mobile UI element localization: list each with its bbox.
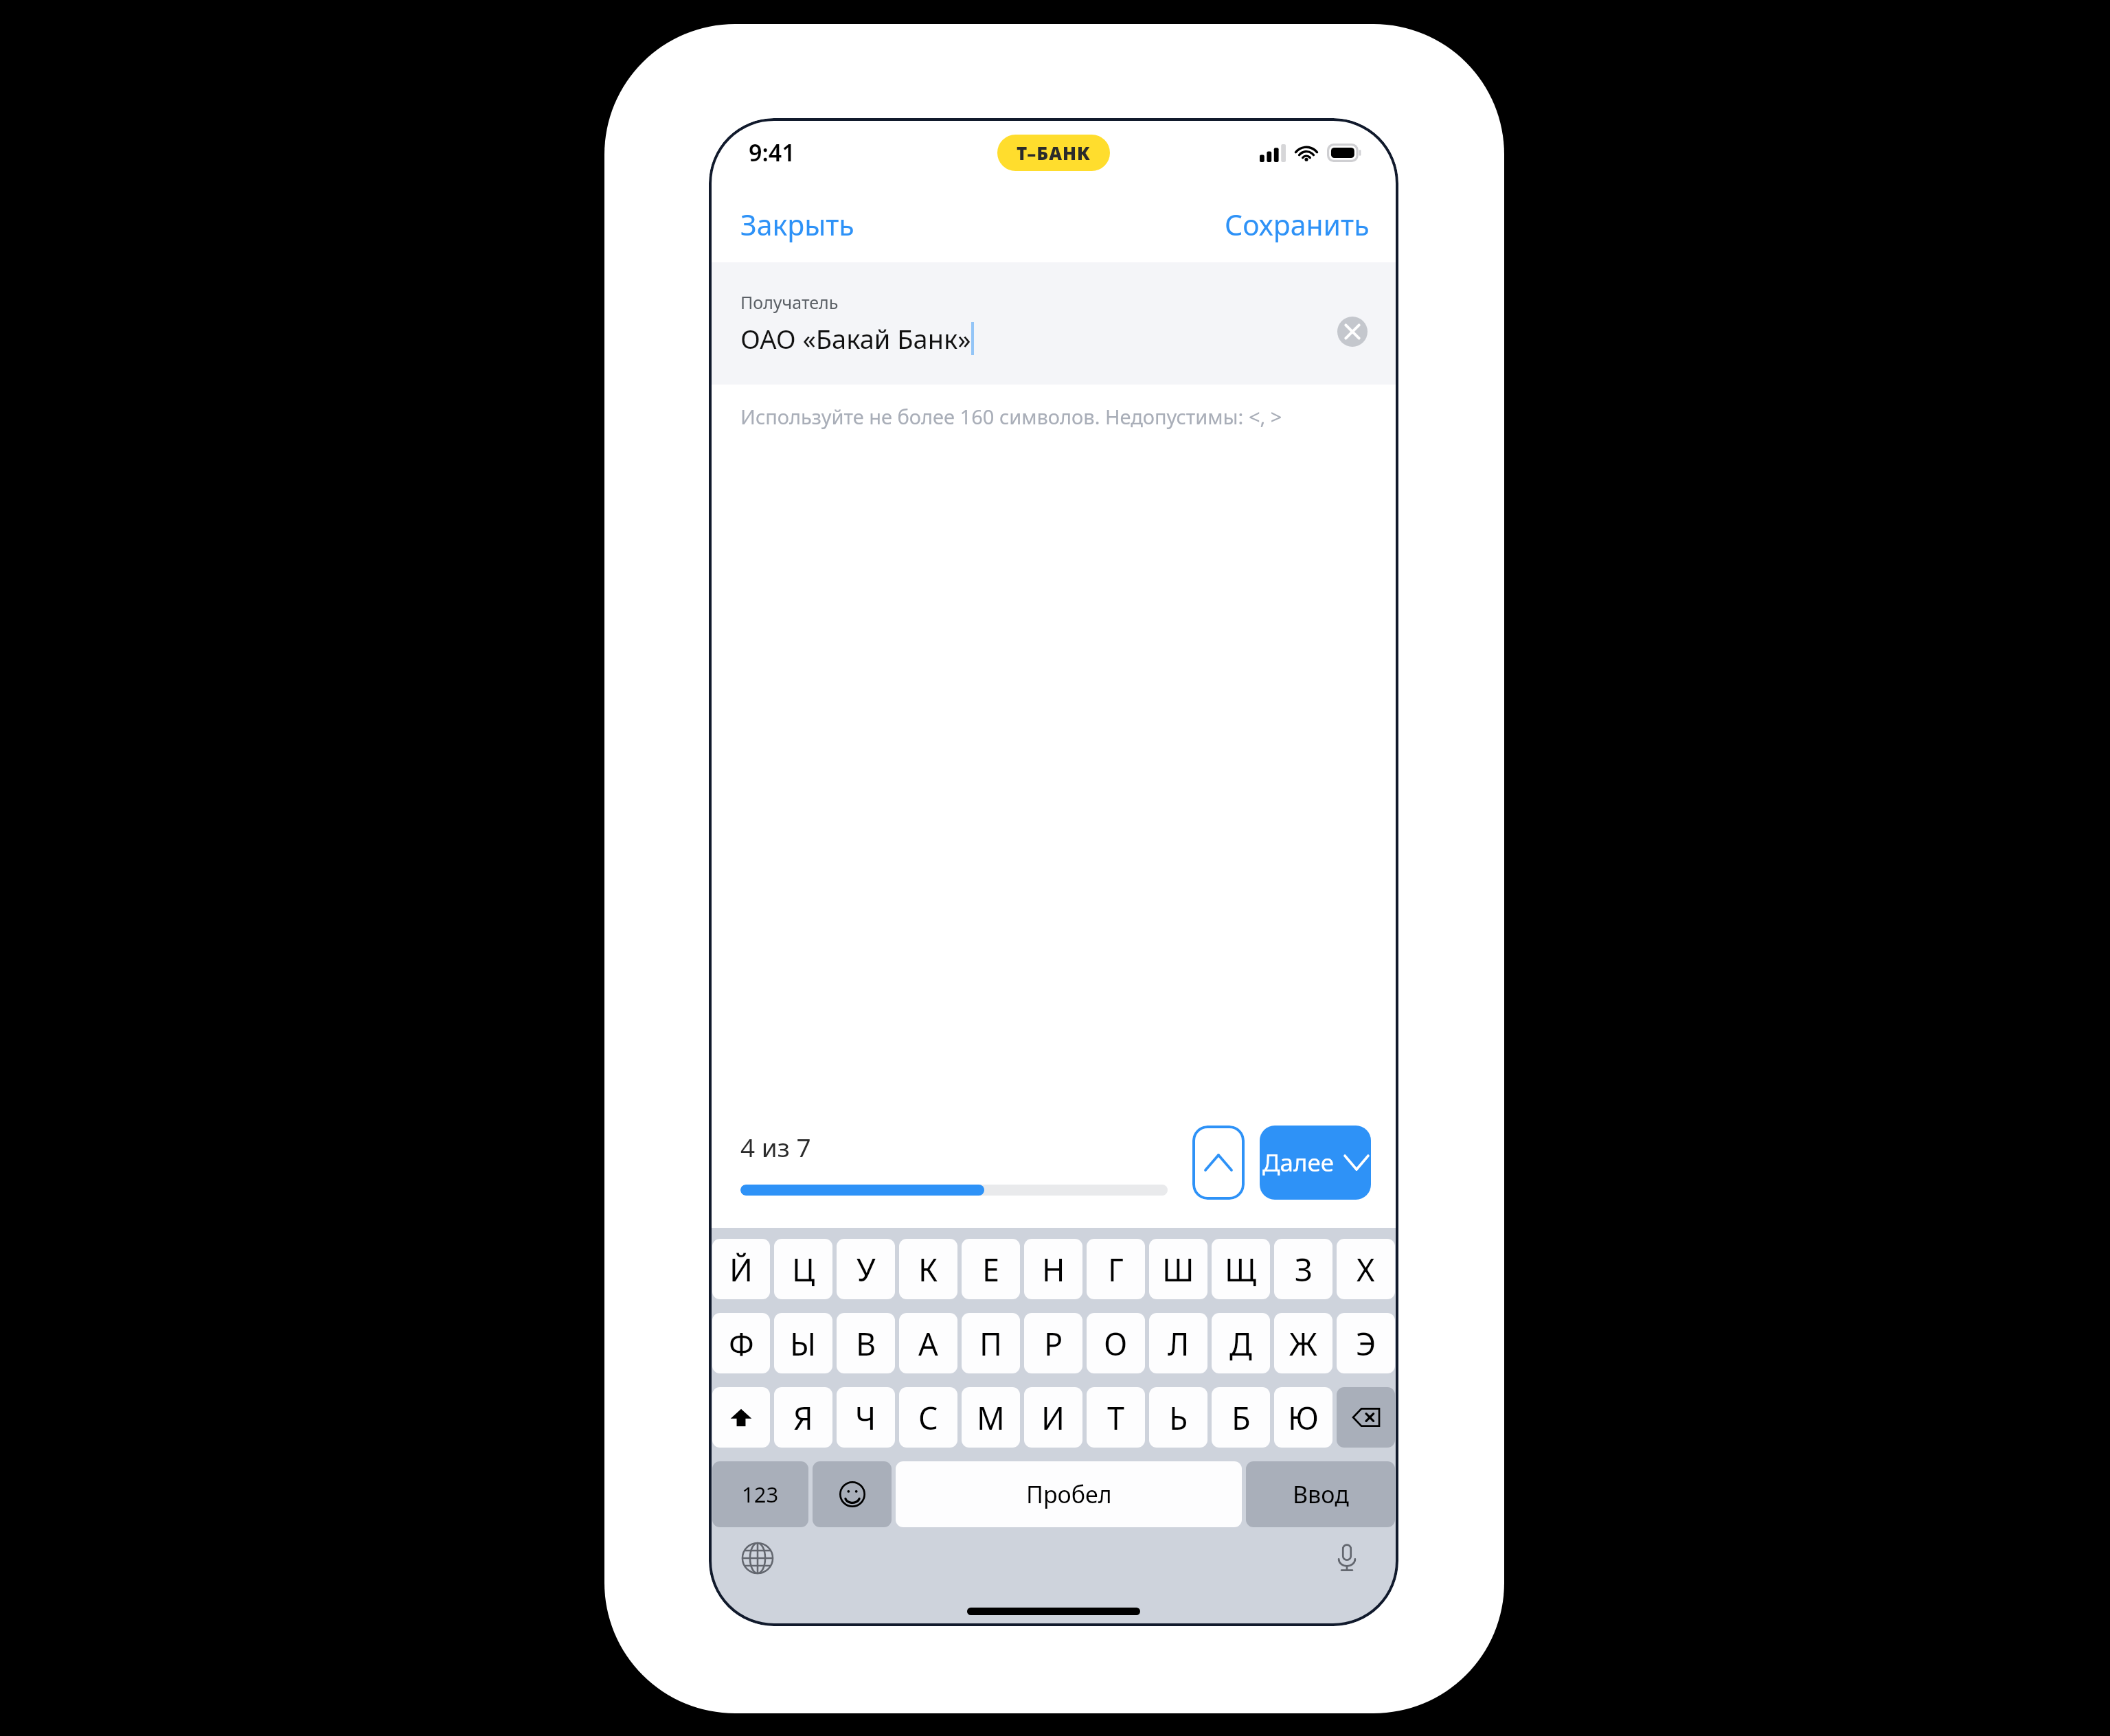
button[interactable]: К (899, 1239, 957, 1299)
staticText: И (1041, 1397, 1065, 1439)
button[interactable]: Ь (1149, 1387, 1207, 1448)
button[interactable]: Ж (1274, 1313, 1332, 1373)
staticText: К (918, 1248, 938, 1290)
button[interactable]: Е (962, 1239, 1020, 1299)
button[interactable]: З (1274, 1239, 1332, 1299)
staticText: Ы (790, 1323, 817, 1364)
staticText: Щ (1225, 1248, 1257, 1290)
staticText: Г (1108, 1248, 1124, 1290)
button[interactable]: Н (1024, 1239, 1082, 1299)
staticText: ОАО «Бакай Банк» (740, 321, 971, 356)
staticText: Р (1044, 1323, 1063, 1364)
staticText: Э (1356, 1323, 1376, 1364)
staticText: Используйте не более 160 символов. Недоп… (740, 403, 1282, 430)
staticText: Сохранить (1225, 205, 1370, 244)
button[interactable]: Сохранить (1207, 194, 1398, 255)
staticText: Д (1229, 1323, 1252, 1364)
staticText: О (1104, 1323, 1128, 1364)
staticText: М (977, 1397, 1005, 1439)
staticText: T–БАНК (1017, 141, 1091, 165)
staticText: Ч (855, 1397, 876, 1439)
button[interactable]: Получатель (709, 262, 1398, 385)
button[interactable]: Диктовка (1321, 1533, 1372, 1584)
button[interactable]: Предыдущее поле (1192, 1126, 1245, 1200)
staticText: Закрыть (740, 205, 854, 244)
button[interactable]: T–БАНК (997, 135, 1110, 171)
staticText: А (918, 1323, 938, 1364)
button[interactable]: Л (1149, 1313, 1207, 1373)
button[interactable]: Эмодзи (813, 1461, 892, 1527)
button[interactable]: Б (1212, 1387, 1270, 1448)
button[interactable]: Ч (837, 1387, 895, 1448)
staticText: Ж (1289, 1323, 1317, 1364)
button[interactable]: П (962, 1313, 1020, 1373)
staticText: Е (982, 1248, 1000, 1290)
button[interactable]: Ы (774, 1313, 832, 1373)
button[interactable]: Щ (1212, 1239, 1270, 1299)
button[interactable]: Shift (712, 1387, 770, 1448)
button[interactable]: И (1024, 1387, 1082, 1448)
staticText: Х (1357, 1248, 1375, 1290)
button[interactable]: А (899, 1313, 957, 1373)
staticText: 9:41 (749, 137, 795, 168)
staticText: Т (1107, 1397, 1125, 1439)
staticText: П (979, 1323, 1002, 1364)
staticText: В (856, 1323, 876, 1364)
button[interactable]: Очистить (1331, 310, 1374, 353)
button[interactable]: Пробел (896, 1461, 1242, 1527)
staticText: С (918, 1397, 938, 1439)
staticText: Й (729, 1248, 753, 1290)
staticText: Ф (729, 1323, 754, 1364)
staticText: Я (793, 1397, 813, 1439)
button[interactable]: Ю (1274, 1387, 1332, 1448)
button[interactable]: 123 (712, 1461, 808, 1527)
staticText: Л (1168, 1323, 1190, 1364)
staticText: Ввод (1293, 1478, 1349, 1510)
button[interactable]: Р (1024, 1313, 1082, 1373)
staticText: Пробел (1026, 1478, 1112, 1510)
staticText: Ь (1169, 1397, 1188, 1439)
button[interactable]: Сменить язык (732, 1533, 783, 1584)
button[interactable]: У (837, 1239, 895, 1299)
button[interactable]: О (1087, 1313, 1145, 1373)
button[interactable]: Т (1087, 1387, 1145, 1448)
staticText: Н (1042, 1248, 1065, 1290)
button[interactable]: Й (712, 1239, 770, 1299)
button[interactable]: Д (1212, 1313, 1270, 1373)
staticText: Ц (792, 1248, 815, 1290)
staticText: З (1295, 1248, 1313, 1290)
staticText: Получатель (740, 290, 839, 314)
button[interactable]: Закрыть (709, 194, 872, 255)
button[interactable]: С (899, 1387, 957, 1448)
staticText: Ш (1162, 1248, 1194, 1290)
staticText: Б (1232, 1397, 1251, 1439)
button[interactable]: Далее (1260, 1126, 1371, 1200)
button[interactable]: Ш (1149, 1239, 1207, 1299)
button[interactable]: Э (1337, 1313, 1395, 1373)
button[interactable]: Ц (774, 1239, 832, 1299)
button[interactable]: Удалить (1337, 1387, 1395, 1448)
staticText: 123 (742, 1480, 779, 1509)
button[interactable]: Г (1087, 1239, 1145, 1299)
button[interactable]: В (837, 1313, 895, 1373)
staticText: У (857, 1248, 876, 1290)
button[interactable]: Х (1337, 1239, 1395, 1299)
button[interactable]: М (962, 1387, 1020, 1448)
button[interactable]: Я (774, 1387, 832, 1448)
button[interactable]: Ввод (1246, 1461, 1395, 1527)
button[interactable]: Ф (712, 1313, 770, 1373)
staticText: Ю (1288, 1397, 1319, 1439)
staticText: 4 из 7 (740, 1130, 811, 1164)
staticText: Далее (1262, 1146, 1335, 1179)
